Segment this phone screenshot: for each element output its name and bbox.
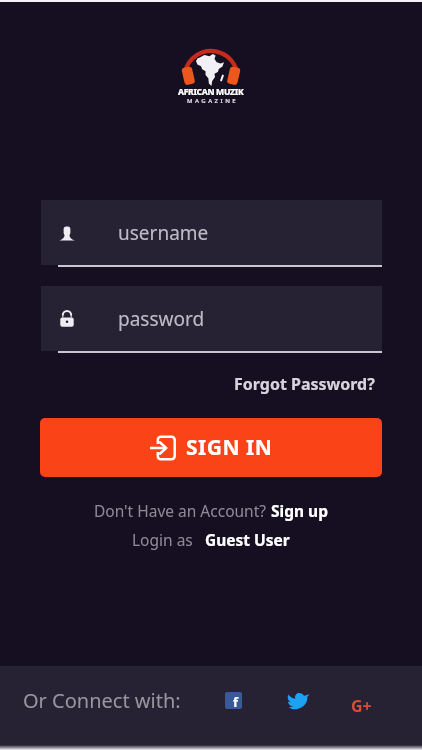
staticText: username bbox=[118, 220, 209, 246]
button[interactable]: password bbox=[41, 286, 382, 351]
button[interactable]: G+ bbox=[351, 695, 372, 717]
staticText: Don't Have an Account? bbox=[94, 500, 271, 521]
button[interactable] bbox=[288, 692, 309, 709]
staticText: f bbox=[233, 693, 239, 709]
button[interactable]: f bbox=[225, 692, 242, 709]
staticText: Sign up bbox=[271, 500, 328, 521]
button[interactable]: Forgot Password? bbox=[234, 373, 375, 395]
staticText: Or Connect with: bbox=[23, 687, 181, 714]
button[interactable]: Don't Have an Account? bbox=[0, 500, 422, 521]
staticText: MAGAZINE bbox=[187, 97, 239, 105]
staticText: SIGN IN bbox=[186, 433, 273, 462]
staticText: Login as bbox=[132, 529, 197, 550]
button[interactable]: Login as bbox=[0, 529, 422, 550]
button[interactable]: SIGN IN bbox=[40, 418, 382, 477]
staticText: Guest User bbox=[205, 529, 290, 550]
staticText: AFRICAN MUZIK bbox=[178, 86, 244, 98]
staticText: password bbox=[118, 306, 205, 332]
button[interactable]: username bbox=[41, 200, 382, 265]
